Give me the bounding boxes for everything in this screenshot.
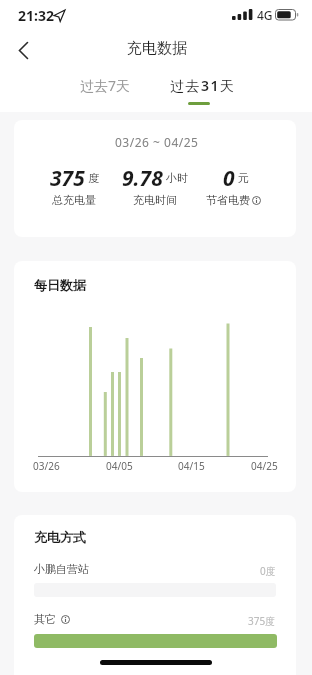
button[interactable] [252, 196, 261, 205]
staticText: 03/26 ~ 04/25 [115, 134, 199, 150]
staticText: 04/25 [251, 459, 278, 473]
staticText: 过去31天 [170, 76, 236, 95]
staticText: 375度 [248, 614, 276, 628]
staticText: 节省电费 [206, 193, 250, 207]
staticText: 每日数据 [34, 277, 86, 293]
staticText: 21:32 [18, 6, 54, 25]
staticText: 过去7天 [80, 76, 131, 95]
staticText: 充电方式 [34, 529, 86, 545]
staticText: 375 [50, 164, 85, 192]
staticText: 4G [257, 7, 273, 23]
staticText: 充电时间 [133, 193, 177, 207]
staticText: 充电数据 [127, 39, 187, 58]
staticText: 0度 [260, 564, 276, 578]
button[interactable]: 其它 [14, 611, 296, 671]
button[interactable]: 小鹏自营站 [14, 555, 296, 613]
staticText: 元 [238, 171, 249, 185]
staticText: 9.78 [122, 164, 163, 192]
staticText: 04/05 [106, 459, 133, 473]
staticText: 04/15 [178, 459, 205, 473]
staticText: 03/26 [33, 459, 60, 473]
button[interactable]: 过去31天 [159, 70, 247, 100]
button[interactable]: 过去7天 [65, 70, 145, 100]
staticText: 度 [88, 171, 99, 185]
button[interactable] [10, 36, 40, 64]
staticText: 小时 [166, 171, 188, 185]
staticText: 小鹏自营站 [34, 562, 89, 576]
button[interactable] [61, 615, 70, 624]
staticText: 总充电量 [52, 193, 96, 207]
staticText: 0 [223, 164, 235, 192]
staticText: 其它 [34, 612, 56, 626]
